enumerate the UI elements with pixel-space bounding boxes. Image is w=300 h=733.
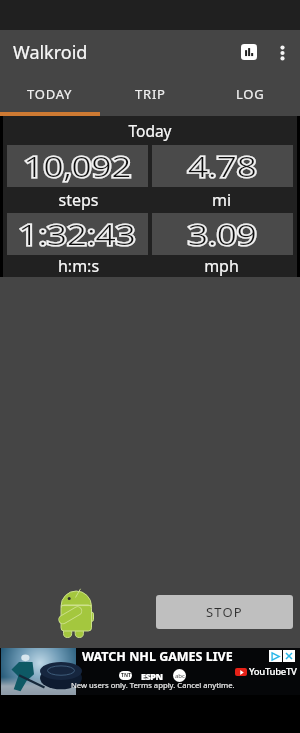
staticText: h:m:s (7, 255, 150, 277)
staticText: mi (150, 189, 293, 211)
staticText: YouTubeTV (249, 665, 297, 678)
staticText: 3.09 (188, 216, 257, 253)
staticText: mph (150, 255, 293, 277)
button[interactable]: Close ad (283, 650, 295, 662)
other: Walking android (58, 588, 94, 638)
staticText: 4.78 (188, 148, 257, 185)
button[interactable]: More options (266, 37, 298, 69)
button[interactable]: Ad choices (269, 650, 282, 662)
staticText: 10,092 (23, 148, 133, 185)
button[interactable]: TRIP (100, 75, 200, 116)
staticText: steps (7, 189, 150, 211)
staticText: 10,092 (23, 148, 133, 185)
staticText: 4.78 (188, 148, 257, 185)
staticText: Today (128, 120, 172, 141)
staticText: 1:32:43 (18, 216, 137, 253)
staticText: TODAY (27, 85, 73, 103)
staticText: 3.09 (188, 216, 257, 253)
button[interactable]: Statistics (233, 36, 265, 68)
staticText: ESPN (141, 670, 163, 682)
button[interactable]: TODAY (0, 75, 100, 116)
staticText: TRIP (135, 85, 166, 103)
staticText: New users only. Terms apply. Cancel anyt… (71, 680, 235, 690)
button[interactable]: STOP (156, 595, 293, 629)
staticText: STOP (206, 603, 243, 621)
staticText: 1:32:43 (18, 216, 137, 253)
staticText: TNT (121, 672, 131, 679)
staticText: abc (175, 672, 185, 680)
button[interactable]: Advertisement (0, 648, 300, 695)
button[interactable]: LOG (200, 75, 300, 116)
staticText: WATCH NHL GAMES LIVE (82, 648, 233, 665)
staticText: Walkroid (13, 40, 88, 65)
staticText: LOG (236, 85, 265, 103)
